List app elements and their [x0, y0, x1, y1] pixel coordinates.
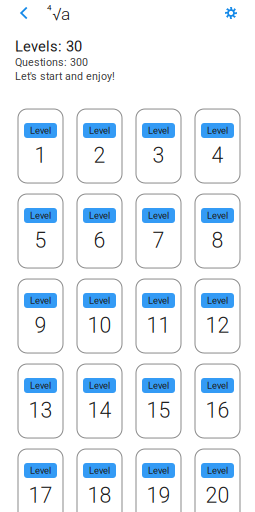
- staticText: Level: [148, 380, 169, 391]
- staticText: 4: [211, 143, 223, 168]
- button[interactable]: Level: [18, 109, 63, 183]
- staticText: Level: [30, 380, 51, 391]
- staticText: 2: [93, 143, 105, 168]
- staticText: 8: [211, 228, 223, 253]
- staticText: Level: [207, 465, 228, 476]
- button[interactable]: Level: [195, 449, 240, 512]
- staticText: Level: [89, 125, 110, 136]
- staticText: 4: [47, 3, 51, 12]
- staticText: 5: [34, 228, 46, 253]
- staticText: 12: [205, 313, 229, 338]
- staticText: Level: [30, 210, 51, 221]
- staticText: 3: [152, 143, 164, 168]
- staticText: Level: [30, 295, 51, 306]
- staticText: 6: [93, 228, 105, 253]
- staticText: 17: [28, 483, 52, 508]
- button[interactable]: Level: [77, 279, 122, 353]
- button[interactable]: Level: [18, 449, 63, 512]
- button[interactable]: Level: [195, 279, 240, 353]
- button[interactable]: Level: [195, 194, 240, 268]
- staticText: 20: [205, 483, 229, 508]
- staticText: Level: [207, 125, 228, 136]
- staticText: 15: [146, 398, 170, 423]
- staticText: Levels: 30: [15, 38, 82, 55]
- staticText: Level: [89, 210, 110, 221]
- staticText: Level: [148, 210, 169, 221]
- button[interactable]: Level: [18, 279, 63, 353]
- button[interactable]: Level: [136, 279, 181, 353]
- staticText: Level: [207, 295, 228, 306]
- button[interactable]: Level: [136, 364, 181, 438]
- staticText: 10: [87, 313, 111, 338]
- button[interactable]: Level: [77, 449, 122, 512]
- staticText: Level: [207, 380, 228, 391]
- button[interactable]: Level: [136, 194, 181, 268]
- button[interactable]: Back: [11, 0, 37, 26]
- staticText: Level: [89, 465, 110, 476]
- staticText: Let's start and enjoy!: [15, 70, 115, 82]
- staticText: 16: [205, 398, 229, 423]
- staticText: Level: [89, 295, 110, 306]
- staticText: 13: [28, 398, 52, 423]
- button[interactable]: Settings: [218, 0, 244, 26]
- staticText: 7: [152, 228, 164, 253]
- staticText: 9: [34, 313, 46, 338]
- button[interactable]: Level: [195, 109, 240, 183]
- staticText: Level: [30, 465, 51, 476]
- staticText: 14: [87, 398, 111, 423]
- staticText: 19: [146, 483, 170, 508]
- staticText: Level: [89, 380, 110, 391]
- button[interactable]: Level: [77, 109, 122, 183]
- button[interactable]: Level: [77, 194, 122, 268]
- staticText: Level: [148, 295, 169, 306]
- staticText: Level: [148, 465, 169, 476]
- staticText: Level: [207, 210, 228, 221]
- staticText: Level: [30, 125, 51, 136]
- staticText: Questions: 300: [15, 56, 88, 68]
- staticText: 18: [87, 483, 111, 508]
- button[interactable]: Level: [77, 364, 122, 438]
- button[interactable]: Level: [18, 194, 63, 268]
- button[interactable]: Level: [18, 364, 63, 438]
- staticText: 1: [34, 143, 46, 168]
- staticText: Level: [148, 125, 169, 136]
- button[interactable]: Level: [195, 364, 240, 438]
- button[interactable]: Level: [136, 109, 181, 183]
- staticText: 11: [146, 313, 170, 338]
- staticText: √a: [52, 4, 70, 24]
- button[interactable]: Level: [136, 449, 181, 512]
